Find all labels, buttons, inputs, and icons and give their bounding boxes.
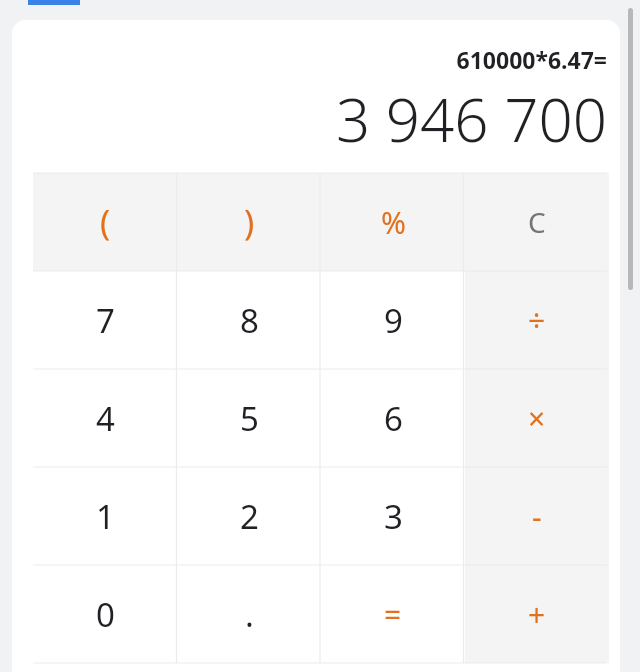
button[interactable]: ) bbox=[177, 173, 321, 271]
button[interactable]: 6 bbox=[321, 369, 465, 467]
button[interactable]: Minus bbox=[465, 467, 609, 565]
button[interactable]: Equals bbox=[321, 565, 465, 663]
staticText: 3 bbox=[384, 494, 403, 539]
button[interactable]: Divide bbox=[465, 271, 609, 369]
button[interactable]: C bbox=[465, 173, 609, 271]
staticText: ( bbox=[100, 199, 111, 245]
staticText: - bbox=[532, 496, 542, 537]
staticText: 7 bbox=[96, 298, 115, 343]
staticText: 9 bbox=[384, 298, 403, 343]
staticText: 8 bbox=[240, 298, 259, 343]
staticText: 0 bbox=[96, 592, 115, 637]
staticText: ) bbox=[244, 199, 255, 245]
staticText: 2 bbox=[240, 494, 259, 539]
button[interactable]: 5 bbox=[177, 369, 321, 467]
button[interactable]: 1 bbox=[33, 467, 177, 565]
button[interactable]: 0 bbox=[33, 565, 177, 663]
button[interactable]: Multiply bbox=[465, 369, 609, 467]
button[interactable]: 9 bbox=[321, 271, 465, 369]
staticText: C bbox=[528, 203, 546, 241]
button[interactable]: % bbox=[321, 173, 465, 271]
button[interactable]: 2 bbox=[177, 467, 321, 565]
staticText: 1 bbox=[96, 494, 115, 539]
staticText: 3 946 700 bbox=[40, 78, 607, 160]
button[interactable]: 3 bbox=[321, 467, 465, 565]
button[interactable]: 8 bbox=[177, 271, 321, 369]
staticText: + bbox=[528, 594, 546, 635]
staticText: ÷ bbox=[528, 300, 546, 341]
staticText: × bbox=[528, 398, 546, 439]
staticText: 610000*6.47= bbox=[40, 44, 607, 75]
button[interactable]: ( bbox=[33, 173, 177, 271]
button[interactable]: Plus bbox=[465, 565, 609, 663]
button[interactable]: 7 bbox=[33, 271, 177, 369]
staticText: . bbox=[245, 592, 254, 637]
button[interactable]: 4 bbox=[33, 369, 177, 467]
button[interactable]: . bbox=[177, 565, 321, 663]
staticText: 6 bbox=[384, 396, 403, 441]
staticText: = bbox=[384, 594, 402, 635]
staticText: 4 bbox=[96, 396, 115, 441]
staticText: 5 bbox=[240, 396, 259, 441]
staticText: % bbox=[381, 202, 406, 243]
